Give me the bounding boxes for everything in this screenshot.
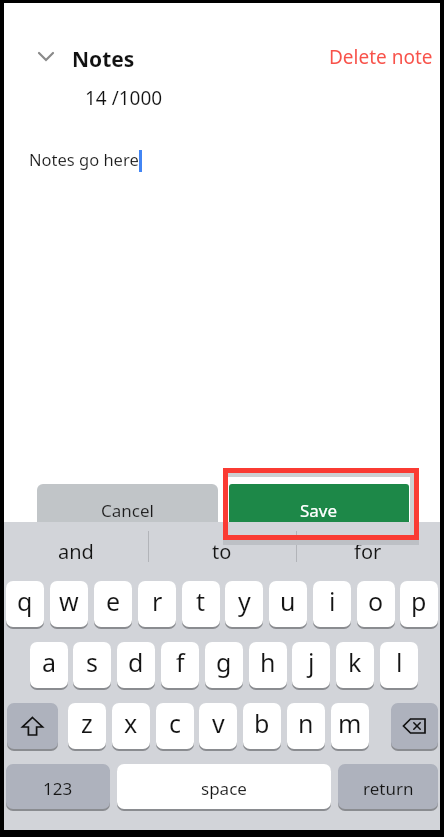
staticText: y (238, 584, 251, 618)
staticText: r (152, 584, 163, 618)
staticText: to (212, 538, 232, 565)
button[interactable]: a (30, 642, 68, 688)
button[interactable] (7, 703, 58, 749)
staticText: k (348, 645, 362, 679)
staticText: e (106, 584, 121, 618)
button[interactable]: j (292, 642, 330, 688)
button[interactable]: s (73, 642, 111, 688)
button[interactable]: p (400, 581, 438, 627)
button[interactable]: for (296, 522, 439, 581)
staticText: and (58, 538, 94, 565)
staticText: u (280, 584, 296, 618)
staticText: h (260, 645, 276, 679)
button[interactable]: f (161, 642, 199, 688)
button[interactable]: x (112, 703, 150, 749)
button[interactable]: space (117, 764, 331, 809)
staticText: Delete note (329, 44, 433, 70)
button[interactable]: g (205, 642, 243, 688)
button[interactable]: k (336, 642, 374, 688)
button[interactable]: Notes go here (20, 138, 424, 184)
button[interactable]: l (380, 642, 418, 688)
staticText: 14 /1000 (85, 85, 163, 111)
button[interactable]: w (50, 581, 88, 627)
button[interactable]: return (338, 764, 438, 809)
staticText: s (86, 645, 98, 679)
button[interactable]: u (269, 581, 307, 627)
staticText: p (411, 584, 427, 618)
staticText: Cancel (101, 499, 154, 522)
staticText: 123 (43, 777, 73, 800)
staticText: w (59, 584, 79, 618)
staticText: x (124, 706, 138, 740)
button[interactable]: Cancel (37, 484, 218, 537)
button[interactable]: r (138, 581, 176, 627)
button[interactable] (391, 703, 438, 749)
button[interactable]: and (4, 522, 148, 581)
staticText: g (216, 645, 232, 679)
button[interactable]: v (199, 703, 237, 749)
staticText: q (17, 584, 33, 618)
staticText: return (363, 777, 414, 800)
staticText: a (42, 645, 57, 679)
staticText: Notes (72, 45, 135, 74)
button[interactable] (34, 46, 58, 68)
button[interactable]: c (156, 703, 194, 749)
staticText: o (368, 584, 384, 618)
staticText: l (396, 645, 403, 679)
staticText: n (298, 706, 314, 740)
staticText: Save (300, 499, 338, 522)
button[interactable]: t (182, 581, 220, 627)
staticText: j (308, 645, 315, 679)
button[interactable]: Delete note (320, 42, 436, 72)
button[interactable]: to (148, 522, 296, 581)
button[interactable]: i (313, 581, 351, 627)
button[interactable]: z (68, 703, 106, 749)
staticText: b (254, 706, 270, 740)
staticText: f (176, 645, 185, 679)
button[interactable]: o (357, 581, 395, 627)
staticText: t (196, 584, 206, 618)
button[interactable]: h (249, 642, 287, 688)
staticText: c (169, 706, 182, 740)
button[interactable]: Save (229, 484, 409, 537)
button[interactable]: d (117, 642, 155, 688)
staticText: Notes go here (29, 148, 139, 170)
button[interactable]: q (6, 581, 44, 627)
button[interactable]: n (287, 703, 325, 749)
staticText: v (212, 706, 225, 740)
staticText: d (128, 645, 144, 679)
staticText: space (201, 777, 247, 800)
staticText: i (329, 584, 336, 618)
staticText: m (338, 706, 362, 740)
button[interactable]: 123 (6, 764, 110, 809)
staticText: z (81, 706, 93, 740)
staticText: for (354, 538, 382, 565)
button[interactable]: y (225, 581, 263, 627)
button[interactable]: b (243, 703, 281, 749)
button[interactable]: e (94, 581, 132, 627)
button[interactable]: m (331, 703, 369, 749)
